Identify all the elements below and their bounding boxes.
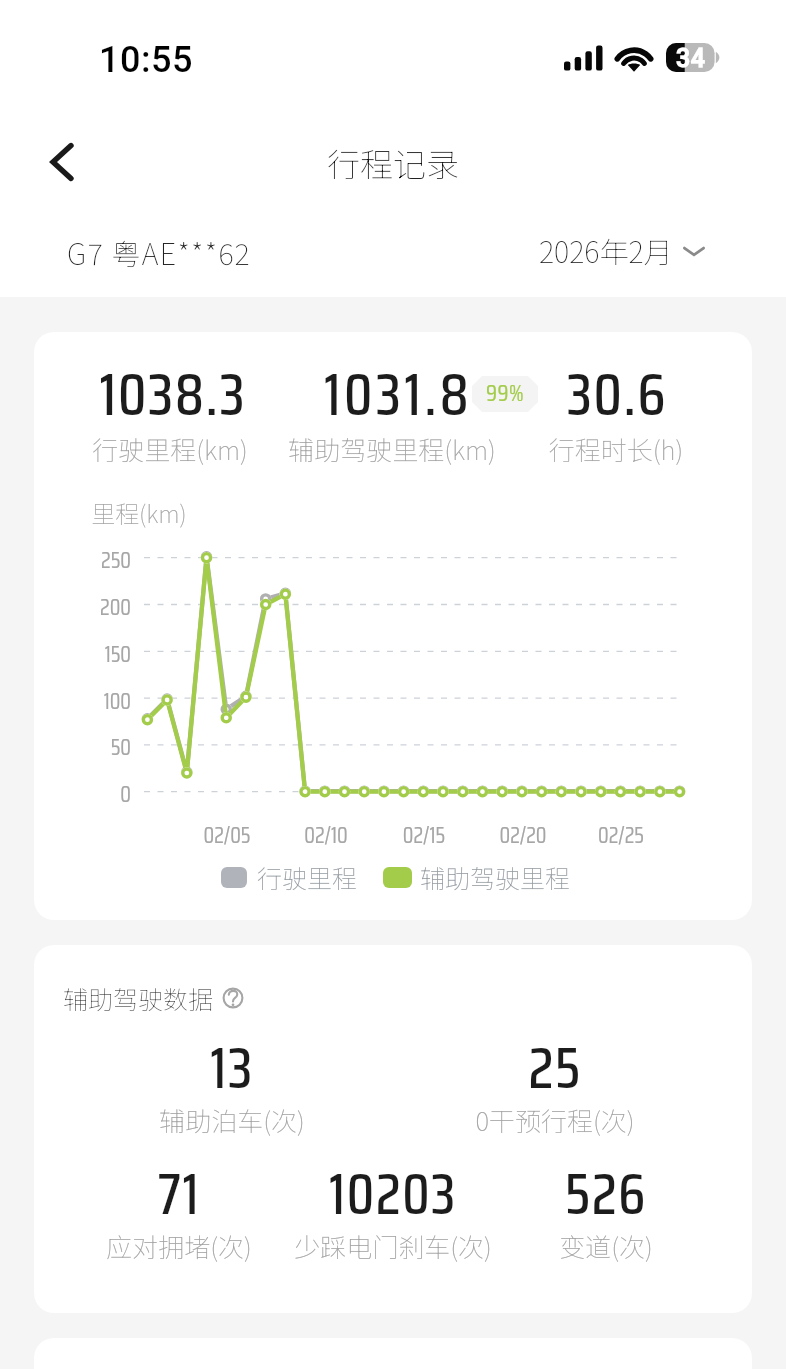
staticText: 行程记录 [243, 139, 543, 187]
staticText: 526 [466, 1149, 746, 1239]
staticText: 02/20 [463, 818, 583, 853]
staticText: 1031.8 [248, 348, 548, 441]
staticText: 02/15 [364, 818, 484, 853]
button[interactable]: 行驶里程 [221, 859, 571, 895]
staticText: 2026年2月 [539, 229, 673, 271]
staticText: 行驶里程 [257, 859, 358, 895]
staticText: 250 [61, 543, 131, 578]
staticText: 辅助驾驶里程 [420, 859, 571, 895]
staticText: 150 [61, 637, 131, 672]
staticText: 行驶里程(km) [34, 430, 320, 468]
staticText: 行程时长(h) [466, 430, 752, 468]
staticText: 0 [61, 777, 131, 812]
staticText: 10:55 [99, 39, 193, 81]
staticText: 02/05 [167, 818, 287, 853]
staticText: 里程(km) [91, 495, 187, 530]
staticText: 辅助泊车(次) [92, 1101, 372, 1139]
staticText: 少踩电门刹车(次) [253, 1227, 533, 1265]
button[interactable]: 10203 [253, 1149, 533, 1249]
staticText: 变道(次) [466, 1227, 746, 1265]
staticText: 0干预行程(次) [415, 1101, 695, 1139]
staticText: 200 [61, 590, 131, 625]
button[interactable]: 71 [39, 1149, 319, 1249]
staticText: 1038.3 [34, 348, 323, 441]
button[interactable]: 25 [415, 1023, 695, 1123]
button[interactable]: 辅助驾驶数据 [63, 980, 244, 1016]
button[interactable]: 13 [92, 1023, 372, 1123]
staticText: 50 [61, 730, 131, 765]
button[interactable]: 526 [466, 1149, 746, 1249]
staticText: 辅助驾驶数据 [63, 980, 214, 1016]
staticText: 100 [61, 684, 131, 719]
staticText: 30.6 [467, 348, 752, 441]
staticText: 13 [92, 1023, 372, 1113]
staticText: 99% [486, 376, 525, 411]
staticText: G7 粤AE***62 [67, 231, 252, 273]
button[interactable]: Back [38, 137, 88, 187]
staticText: 25 [415, 1023, 695, 1113]
staticText: 辅助驾驶里程(km) [242, 430, 542, 468]
staticText: 02/25 [561, 818, 681, 853]
staticText: 应对拥堵(次) [39, 1227, 319, 1265]
staticText: 34 [676, 44, 706, 73]
staticText: 10203 [253, 1149, 533, 1239]
button[interactable]: 2026年2月 [539, 229, 706, 271]
staticText: 71 [39, 1149, 319, 1239]
staticText: 02/10 [266, 818, 386, 853]
